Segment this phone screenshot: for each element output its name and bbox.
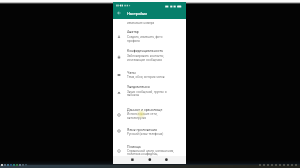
button[interactable]: Back	[127, 156, 140, 164]
staticText: Звуки сообщений, группы и	[127, 90, 167, 94]
staticText: Справочный центр, напиши нам,	[127, 149, 174, 153]
staticText: профиля	[127, 39, 140, 43]
staticText: Русский (язык телефона)	[127, 132, 164, 136]
staticText: Данные и хранилище	[127, 108, 163, 112]
staticText: Уведомления	[127, 85, 150, 89]
staticText: политика конфиденц.	[127, 152, 159, 156]
button[interactable]: Back	[117, 11, 121, 15]
button[interactable]: Уведомления	[113, 82, 186, 104]
button[interactable]: Конфиденциальность	[113, 46, 186, 67]
button[interactable]: изменение номера	[113, 19, 186, 27]
button[interactable]: Помощь	[113, 142, 186, 156]
button[interactable]: Recent apps	[160, 156, 173, 164]
button[interactable]: Home	[143, 156, 156, 164]
staticText: Создать, изменить, фото	[127, 35, 163, 39]
button[interactable]: Чаты	[113, 68, 186, 83]
staticText: Помощь	[127, 145, 141, 149]
staticText: Чаты	[127, 71, 136, 75]
button[interactable]: Данные и хранилище	[113, 105, 186, 125]
staticText: Аватар	[127, 30, 139, 34]
staticText: Настройки	[127, 11, 147, 16]
staticText: исчезающие сообщения	[127, 58, 163, 62]
staticText: Конфиденциальность	[127, 49, 164, 53]
staticText: Заблокировать контакты,	[127, 54, 165, 58]
staticText: изменение номера	[127, 21, 155, 25]
staticText: Язык приложения	[127, 128, 157, 132]
button[interactable]: Аватар	[113, 27, 186, 47]
staticText: Тема, обои, история чатов	[127, 75, 165, 79]
staticText: звонков	[127, 93, 139, 97]
staticText: автозагрузка	[127, 116, 146, 120]
button[interactable]: Язык приложения	[113, 125, 186, 142]
staticText: Использование сети,	[127, 112, 158, 116]
